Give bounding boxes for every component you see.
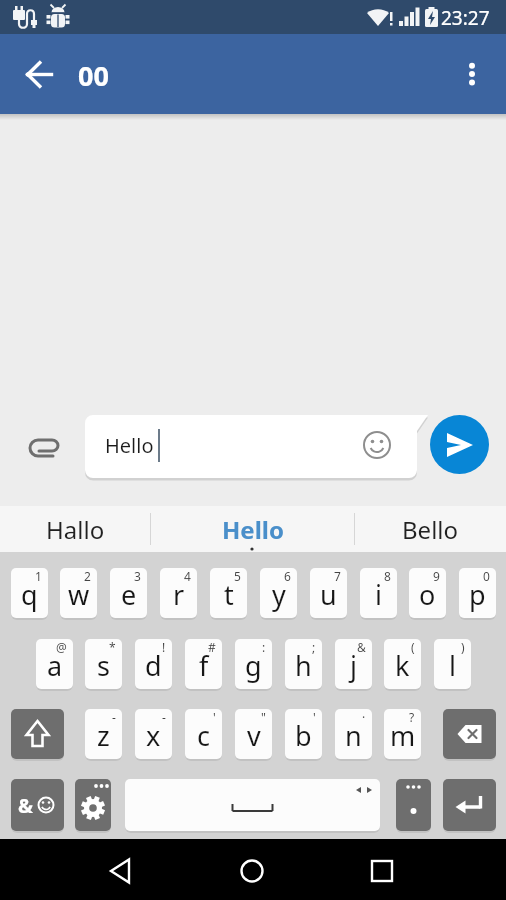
button[interactable]: d <box>135 639 172 689</box>
staticText: · <box>362 709 366 725</box>
button[interactable]: i <box>360 568 397 618</box>
button[interactable]: Hallo <box>0 506 150 552</box>
staticText: ; <box>312 639 316 655</box>
button[interactable] <box>16 85 64 133</box>
staticText: 3 <box>134 568 141 584</box>
staticText: - <box>112 709 116 725</box>
staticText: v <box>247 717 261 754</box>
button[interactable]: s <box>85 639 122 689</box>
staticText: - <box>162 709 166 725</box>
staticText: 2 <box>84 568 91 584</box>
button[interactable]: c <box>185 709 222 759</box>
staticText: : <box>262 639 266 655</box>
staticText: 23:27 <box>441 5 490 31</box>
staticText: u <box>320 576 337 613</box>
button[interactable] <box>98 847 146 895</box>
staticText: f <box>199 647 209 684</box>
staticText: i <box>375 576 382 613</box>
staticText: Bello <box>402 513 459 546</box>
button[interactable]: h <box>285 639 322 689</box>
staticText: l <box>449 647 456 684</box>
staticText: Hello <box>105 432 154 459</box>
staticText: ! <box>162 639 166 655</box>
button[interactable]: q <box>11 568 48 618</box>
button[interactable]: t <box>210 568 247 618</box>
staticText: 7 <box>334 568 341 584</box>
staticText: e <box>121 576 137 613</box>
button[interactable]: a <box>36 639 73 689</box>
button[interactable] <box>358 847 406 895</box>
staticText: s <box>97 647 110 684</box>
staticText: z <box>97 717 110 754</box>
staticText: 8 <box>384 568 391 584</box>
button[interactable]: l <box>434 639 471 689</box>
button[interactable]: g <box>235 639 272 689</box>
staticText: ) <box>461 639 465 655</box>
button[interactable]: Hello <box>151 506 354 552</box>
staticText: p <box>469 576 486 613</box>
staticText: 6 <box>284 568 291 584</box>
staticText: 5 <box>234 568 241 584</box>
button[interactable]: m <box>384 709 421 759</box>
staticText: r <box>173 576 185 613</box>
staticText: # <box>208 639 216 655</box>
button[interactable]: b <box>285 709 322 759</box>
staticText: * <box>109 639 116 655</box>
button[interactable]: w <box>60 568 97 618</box>
staticText: & <box>18 792 33 819</box>
staticText: t <box>224 576 234 613</box>
staticText: 4 <box>184 568 191 584</box>
staticText: q <box>21 576 38 613</box>
button[interactable] <box>396 779 431 831</box>
staticText: h <box>295 647 312 684</box>
button[interactable] <box>452 50 492 100</box>
button[interactable] <box>357 425 397 465</box>
staticText: k <box>395 647 410 684</box>
button[interactable] <box>85 415 428 478</box>
staticText: ( <box>411 639 415 655</box>
staticText: m <box>390 717 416 754</box>
staticText: n <box>345 717 362 754</box>
staticText: ' <box>213 709 216 725</box>
button[interactable]: n <box>335 709 372 759</box>
button[interactable] <box>75 779 111 831</box>
staticText: 1 <box>35 568 42 584</box>
staticText: 9 <box>433 568 440 584</box>
button[interactable]: f <box>185 639 222 689</box>
button[interactable]: Bello <box>355 506 506 552</box>
button[interactable]: k <box>384 639 421 689</box>
staticText: o <box>419 576 436 613</box>
staticText: Hello <box>222 513 284 546</box>
button[interactable] <box>443 709 496 759</box>
staticText: j <box>350 647 357 684</box>
button[interactable] <box>23 426 67 470</box>
button[interactable] <box>443 779 496 831</box>
staticText: Hallo <box>46 513 105 546</box>
staticText: x <box>146 717 161 754</box>
button[interactable]: x <box>135 709 172 759</box>
button[interactable]: r <box>160 568 197 618</box>
button[interactable]: e <box>110 568 147 618</box>
staticText: ' <box>313 709 316 725</box>
button[interactable]: z <box>85 709 122 759</box>
button[interactable]: o <box>409 568 446 618</box>
button[interactable]: v <box>235 709 272 759</box>
staticText: b <box>295 717 312 754</box>
staticText: g <box>245 647 262 684</box>
button[interactable]: j <box>335 639 372 689</box>
staticText: d <box>145 647 162 684</box>
button[interactable] <box>228 847 276 895</box>
button[interactable] <box>11 709 64 759</box>
button[interactable] <box>125 779 380 831</box>
button[interactable]: y <box>260 568 297 618</box>
button[interactable] <box>430 415 489 474</box>
staticText: ? <box>409 709 415 725</box>
staticText: 00 <box>78 57 109 94</box>
button[interactable]: u <box>310 568 347 618</box>
button[interactable]: p <box>459 568 496 618</box>
staticText: a <box>47 647 63 684</box>
staticText: c <box>197 717 210 754</box>
button[interactable]: & <box>11 779 64 831</box>
staticText: y <box>272 576 286 613</box>
staticText: w <box>68 576 90 613</box>
